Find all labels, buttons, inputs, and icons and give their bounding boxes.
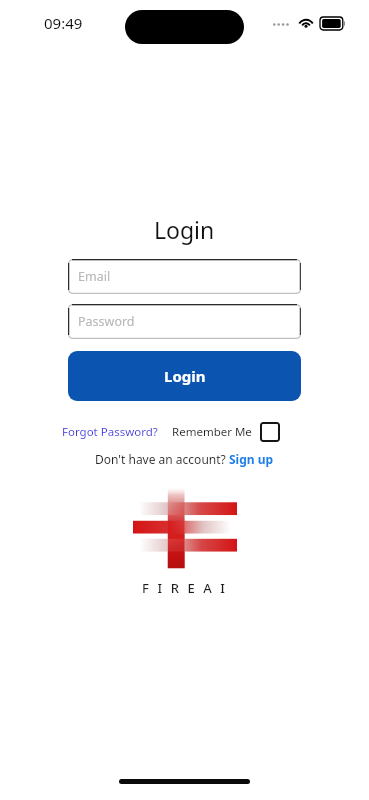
button[interactable]: Sign up xyxy=(229,451,274,467)
staticText: Password xyxy=(78,313,135,330)
staticText: Sign up xyxy=(229,451,274,467)
staticText: Login xyxy=(164,366,206,386)
staticText: Don't have an account? xyxy=(95,451,229,467)
button[interactable]: Email xyxy=(68,259,301,294)
staticText: F I R E A I xyxy=(142,579,228,597)
staticText: Remember Me xyxy=(172,424,252,440)
button[interactable]: Remember Me checkbox xyxy=(260,422,280,442)
staticText: Forgot Password? xyxy=(62,424,158,440)
staticText: Login xyxy=(154,214,215,245)
button[interactable]: Login xyxy=(68,351,301,401)
staticText: 09:49 xyxy=(44,13,83,33)
button[interactable]: Forgot Password? xyxy=(62,424,158,440)
button[interactable]: Password xyxy=(68,304,301,339)
staticText: Email xyxy=(78,268,111,285)
